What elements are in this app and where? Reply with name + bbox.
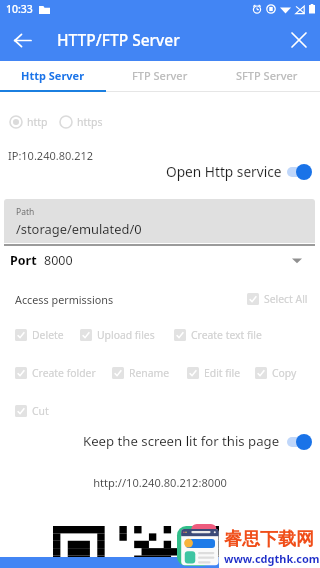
staticText: Edit file [204,366,241,380]
staticText: Path [16,206,35,218]
button[interactable]: FTP Server [106,61,213,92]
staticText: Open Http service [166,162,282,181]
staticText: Port [10,252,37,269]
button[interactable]: Rename [112,366,170,380]
staticText: Create folder [32,366,96,380]
staticText: Rename [129,366,170,380]
button[interactable]: Create text file [174,328,262,342]
staticText: SFTP Server [236,68,298,83]
staticText: 睿思下载网 [224,528,314,551]
button[interactable]: Delete [15,328,64,342]
staticText: Delete [32,328,64,342]
button[interactable] [287,433,312,450]
staticText: Copy [272,366,297,380]
staticText: Keep the screen lit for this page [83,432,280,450]
button[interactable]: Create folder [15,366,96,380]
button[interactable]: Edit file [187,366,241,380]
button[interactable]: Http Server [0,61,106,92]
staticText: IP:10.240.80.212 [8,148,94,163]
staticText: Cut [32,404,49,418]
button[interactable]: https [59,115,103,129]
button[interactable]: SFTP Server [213,61,320,92]
staticText: 8000 [44,252,73,269]
button[interactable]: http [9,115,48,129]
button[interactable]: Copy [255,366,297,380]
button[interactable]: Select All [247,292,308,306]
staticText: Access permissions [15,292,114,307]
button[interactable]: Upload files [80,328,155,342]
button[interactable]: Cut [15,404,49,418]
staticText: http [27,115,48,129]
staticText: https [77,115,103,129]
staticText: www.cdgthk.com [224,551,320,566]
staticText: 10:33 [6,2,33,16]
staticText: /storage/emulated/0 [16,220,142,238]
staticText: Select All [264,292,308,306]
staticText: FTP Server [132,68,188,83]
button[interactable]: Close [284,25,314,55]
button[interactable] [287,163,312,180]
button[interactable]: Back [6,24,38,56]
staticText: Http Server [21,68,85,83]
button[interactable]: Path [4,199,315,243]
staticText: HTTP/FTP Server [57,29,180,50]
staticText: Upload files [97,328,155,342]
staticText: Create text file [191,328,262,342]
staticText: http://10.240.80.212:8000 [0,475,320,490]
